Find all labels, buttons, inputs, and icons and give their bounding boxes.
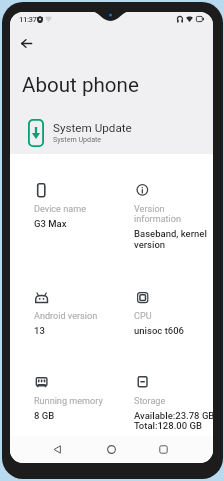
staticText: unisoc t606: [134, 325, 185, 336]
staticText: Baseband, kernel: [134, 228, 207, 239]
button[interactable]: [133, 288, 212, 338]
staticText: System Update: [53, 135, 102, 143]
staticText: 8 GB: [34, 410, 55, 421]
staticText: G3 Max: [34, 218, 67, 229]
button[interactable]: [34, 179, 113, 230]
staticText: Device name: [34, 204, 86, 215]
button[interactable]: Recent apps: [152, 438, 174, 460]
staticText: Storage: [134, 396, 166, 407]
staticText: Version: [134, 204, 165, 215]
button[interactable]: [34, 373, 113, 423]
button[interactable]: Home: [100, 438, 122, 460]
staticText: About phone: [22, 73, 139, 97]
staticText: Android version: [34, 311, 98, 322]
staticText: CPU: [134, 311, 152, 322]
button[interactable]: [133, 180, 212, 251]
button[interactable]: Back: [46, 438, 68, 460]
staticText: Running memory: [34, 396, 103, 407]
button[interactable]: [133, 372, 212, 433]
staticText: System Update: [53, 121, 132, 135]
button[interactable]: [10, 115, 213, 151]
staticText: Total:128.00 GB: [134, 420, 202, 431]
button[interactable]: Navigate up: [15, 32, 37, 54]
staticText: information: [134, 214, 181, 225]
staticText: version: [134, 239, 166, 250]
staticText: 11:37: [19, 15, 37, 24]
button[interactable]: [34, 289, 113, 338]
staticText: 13: [34, 325, 45, 336]
staticText: Available:23.78 GB: [134, 410, 213, 421]
